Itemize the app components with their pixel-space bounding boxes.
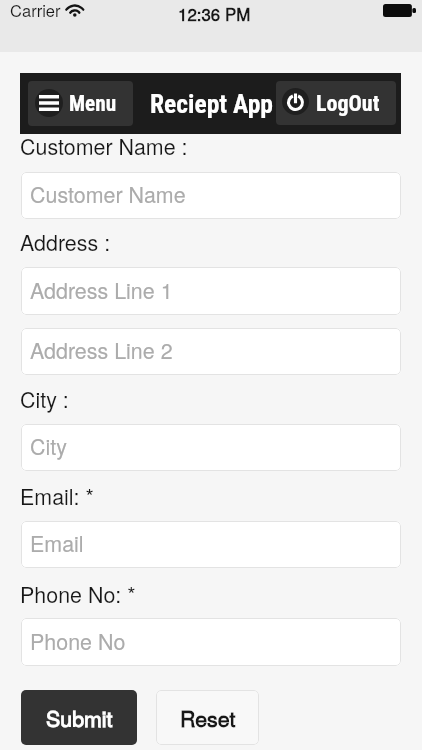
staticText: Reset bbox=[180, 702, 236, 733]
button[interactable]: Phone No bbox=[21, 618, 401, 666]
staticText: City : bbox=[20, 383, 69, 414]
staticText: Customer Name bbox=[30, 178, 186, 209]
staticText: Phone No: * bbox=[20, 578, 136, 609]
button[interactable]: Address Line 2 bbox=[21, 328, 401, 375]
staticText: Customer Name : bbox=[20, 130, 188, 161]
button[interactable]: Log out bbox=[276, 81, 396, 125]
staticText: Address Line 2 bbox=[30, 334, 173, 365]
staticText: City bbox=[30, 430, 67, 461]
button[interactable]: Email bbox=[21, 521, 401, 568]
other: Log out bbox=[282, 88, 309, 115]
button[interactable]: Address Line 1 bbox=[21, 267, 401, 315]
button[interactable]: Customer Name bbox=[21, 172, 401, 219]
staticText: Carrier bbox=[10, 0, 61, 22]
button[interactable]: Menu bbox=[28, 81, 133, 126]
button[interactable]: Reset bbox=[156, 690, 259, 745]
other: Menu bbox=[35, 89, 63, 117]
staticText: Address Line 1 bbox=[30, 274, 173, 305]
button[interactable]: Submit bbox=[21, 690, 137, 745]
staticText: LogOut bbox=[316, 91, 380, 117]
staticText: 12:36 PM bbox=[178, 2, 251, 26]
staticText: Email: * bbox=[20, 480, 94, 511]
button[interactable]: City bbox=[21, 424, 401, 471]
staticText: Menu bbox=[69, 91, 117, 116]
staticText: Email bbox=[30, 527, 84, 558]
staticText: Reciept App bbox=[150, 89, 273, 119]
staticText: Submit bbox=[46, 702, 113, 733]
staticText: Phone No bbox=[30, 625, 126, 656]
staticText: Address : bbox=[20, 226, 111, 257]
